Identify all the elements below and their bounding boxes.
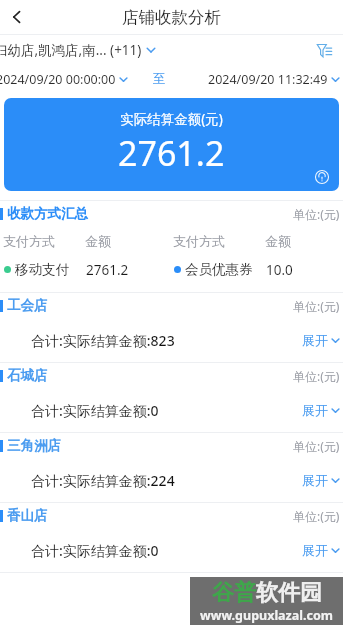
staticText: 移动支付: [15, 261, 86, 278]
button[interactable]: 2024/09/20 00:00:00: [0, 71, 128, 88]
staticText: 单位:(元): [293, 298, 340, 314]
button[interactable]: 合计:实际结算金额:0: [0, 528, 343, 572]
staticText: 展开: [302, 332, 328, 348]
staticText: 妇幼店,凯鸿店,南... (+11): [0, 41, 142, 59]
button[interactable]: 实际结算金额(元): [4, 98, 339, 191]
staticText: 支付方式: [3, 233, 85, 249]
button[interactable]: 移动支付: [0, 256, 343, 283]
staticText: 收款方式汇总: [7, 205, 88, 222]
staticText: 单位:(元): [293, 508, 340, 524]
staticText: 香山店: [7, 507, 48, 524]
staticText: 会员优惠券: [185, 261, 266, 278]
staticText: 展开: [302, 472, 328, 488]
staticText: 合计:实际结算金额:0: [31, 401, 159, 420]
staticText: 金额: [265, 233, 291, 249]
staticText: 展开: [302, 402, 328, 418]
staticText: 合计:实际结算金额:224: [31, 471, 175, 490]
button[interactable]: Back: [0, 0, 34, 34]
staticText: 支付方式: [173, 233, 265, 249]
staticText: 合计:实际结算金额:0: [31, 541, 159, 560]
staticText: 至: [153, 71, 166, 87]
staticText: 10.0: [266, 261, 293, 279]
staticText: 店铺收款分析: [122, 7, 221, 28]
staticText: 软件园: [256, 579, 322, 607]
staticText: www.gupuxlazal.com: [200, 607, 333, 624]
staticText: 2024/09/20 11:32:49: [208, 71, 328, 88]
staticText: 单位:(元): [293, 368, 340, 384]
staticText: 2761.2: [86, 261, 174, 279]
staticText: 工会店: [7, 297, 48, 314]
button[interactable]: 合计:实际结算金额:823: [0, 318, 343, 362]
staticText: 单位:(元): [293, 206, 340, 222]
staticText: 三角洲店: [7, 437, 61, 454]
staticText: 2761.2: [118, 130, 225, 176]
staticText: 实际结算金额(元): [120, 110, 223, 128]
staticText: 2024/09/20 00:00:00: [0, 71, 116, 88]
button[interactable]: 合计:实际结算金额:224: [0, 458, 343, 502]
button[interactable]: Filter: [311, 37, 337, 63]
staticText: 合计:实际结算金额:823: [31, 331, 175, 350]
button[interactable]: Help: [313, 168, 331, 186]
staticText: 石城店: [7, 367, 48, 384]
staticText: 单位:(元): [293, 438, 340, 454]
staticText: 展开: [302, 542, 328, 558]
staticText: 谷普: [212, 579, 256, 607]
button[interactable]: 合计:实际结算金额:0: [0, 388, 343, 432]
button[interactable]: 2024/09/20 11:32:49: [208, 71, 340, 88]
button[interactable]: 妇幼店,凯鸿店,南... (+11): [0, 41, 156, 59]
staticText: 金额: [85, 233, 173, 249]
